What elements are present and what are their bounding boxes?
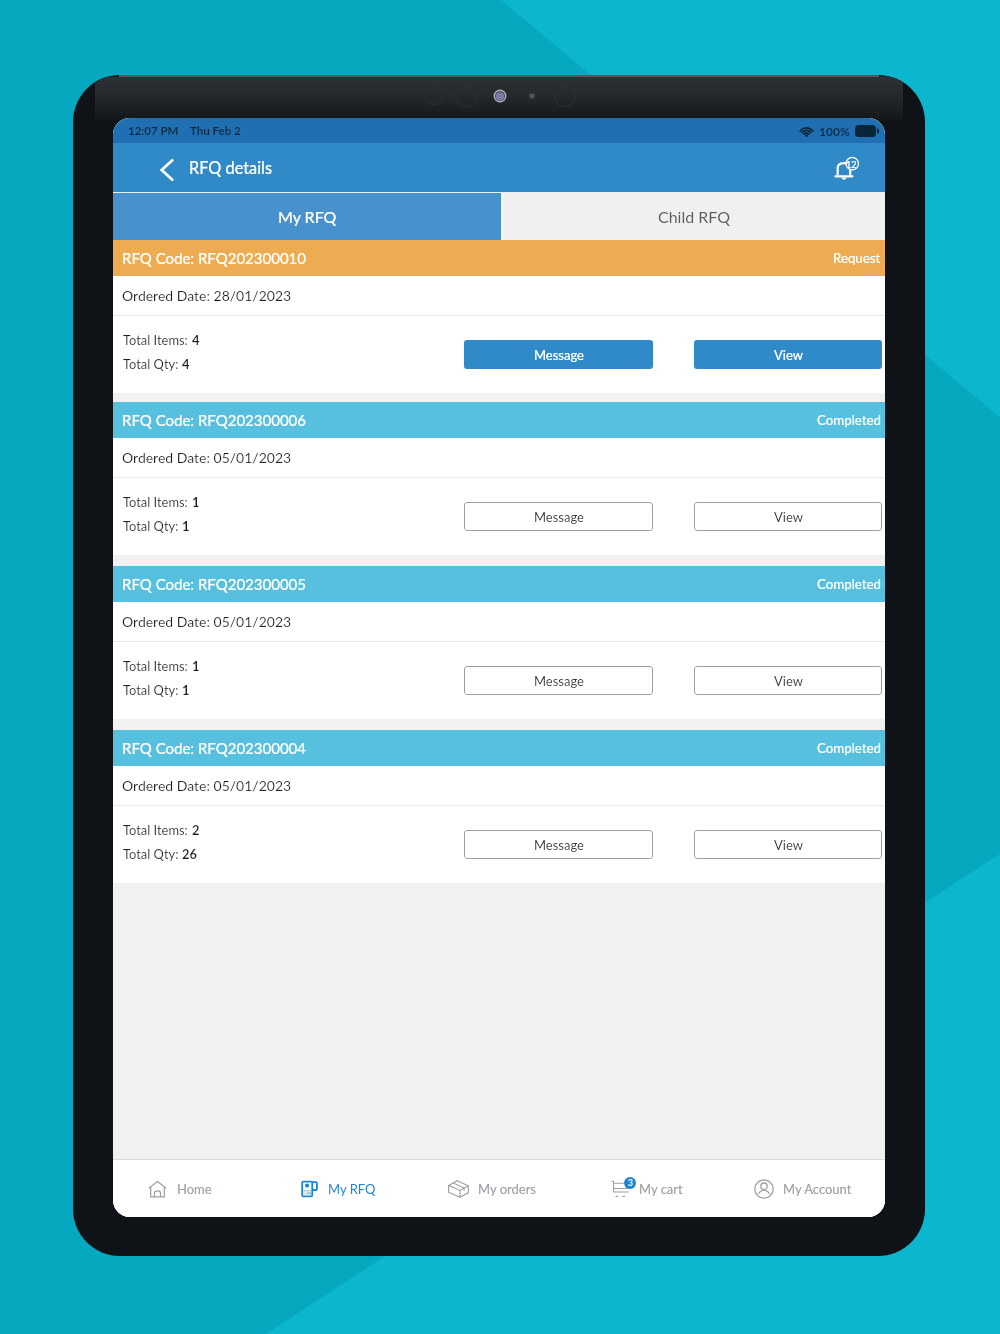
staticText: 1 (182, 682, 190, 697)
staticText: Total Qty: (123, 518, 182, 533)
button[interactable]: View (694, 502, 882, 531)
staticText: RFQ Code: RFQ202300010 (122, 249, 307, 267)
staticText: RFQ Code: RFQ202300006 (122, 411, 307, 429)
staticText: 100% (819, 124, 850, 138)
button[interactable]: My RFQ (113, 193, 501, 240)
staticText: RFQ Code: RFQ202300004 (122, 739, 307, 757)
staticText: Ordered Date: 05/01/2023 (122, 449, 292, 466)
staticText: 2 (192, 822, 200, 837)
staticText: Request (833, 250, 881, 266)
button[interactable]: Child RFQ (503, 193, 885, 240)
staticText: 1 (182, 518, 190, 533)
button[interactable]: Message (464, 502, 653, 531)
button[interactable]: View (694, 340, 882, 369)
staticText: Message (534, 837, 584, 853)
staticText: Total Qty: (123, 682, 182, 697)
staticText: 1 (192, 494, 200, 509)
button[interactable]: Message (464, 340, 653, 369)
staticText: View (774, 347, 803, 363)
staticText: 26 (182, 846, 197, 861)
staticText: My RFQ (278, 207, 337, 226)
staticText: Total Items: (123, 658, 192, 673)
staticText: View (774, 673, 803, 689)
button[interactable]: Message (464, 666, 653, 695)
button[interactable]: View (694, 666, 882, 695)
staticText: 12:07 PM (128, 124, 179, 138)
staticText: Total Items: (123, 822, 192, 837)
button[interactable]: Home (148, 1160, 212, 1217)
staticText: Ordered Date: 05/01/2023 (122, 777, 292, 794)
staticText: Completed (817, 576, 881, 592)
staticText: Total Items: (123, 494, 192, 509)
staticText: My orders (478, 1181, 536, 1197)
staticText: Total Qty: (123, 356, 182, 371)
staticText: Total Qty: (123, 846, 182, 861)
staticText: 1 (192, 658, 200, 673)
button[interactable]: My RFQ (300, 1160, 376, 1217)
button[interactable]: My Account (754, 1160, 852, 1217)
staticText: Message (534, 347, 584, 363)
button[interactable]: My orders (448, 1160, 536, 1217)
staticText: Ordered Date: 28/01/2023 (122, 287, 292, 304)
staticText: 12 (846, 159, 857, 170)
staticText: Total Items: (123, 332, 192, 347)
staticText: Ordered Date: 05/01/2023 (122, 613, 292, 630)
staticText: 4 (182, 356, 190, 371)
staticText: Completed (817, 740, 881, 756)
staticText: Thu Feb 2 (190, 124, 241, 138)
staticText: 3 (628, 1178, 633, 1188)
staticText: 4 (192, 332, 200, 347)
button[interactable]: View (694, 830, 882, 859)
button[interactable]: Notifications (826, 150, 866, 190)
staticText: View (774, 837, 803, 853)
staticText: Message (534, 673, 584, 689)
staticText: My Account (783, 1181, 852, 1197)
staticText: Child RFQ (658, 207, 731, 226)
staticText: RFQ details (189, 158, 272, 178)
button[interactable]: Message (464, 830, 653, 859)
staticText: My cart (639, 1181, 683, 1197)
staticText: Completed (817, 412, 881, 428)
staticText: Message (534, 509, 584, 525)
staticText: RFQ Code: RFQ202300005 (122, 575, 307, 593)
staticText: Home (177, 1181, 212, 1197)
button[interactable]: 3 (611, 1160, 683, 1217)
button[interactable]: Back (151, 154, 183, 186)
staticText: View (774, 509, 803, 525)
staticText: My RFQ (328, 1181, 376, 1197)
